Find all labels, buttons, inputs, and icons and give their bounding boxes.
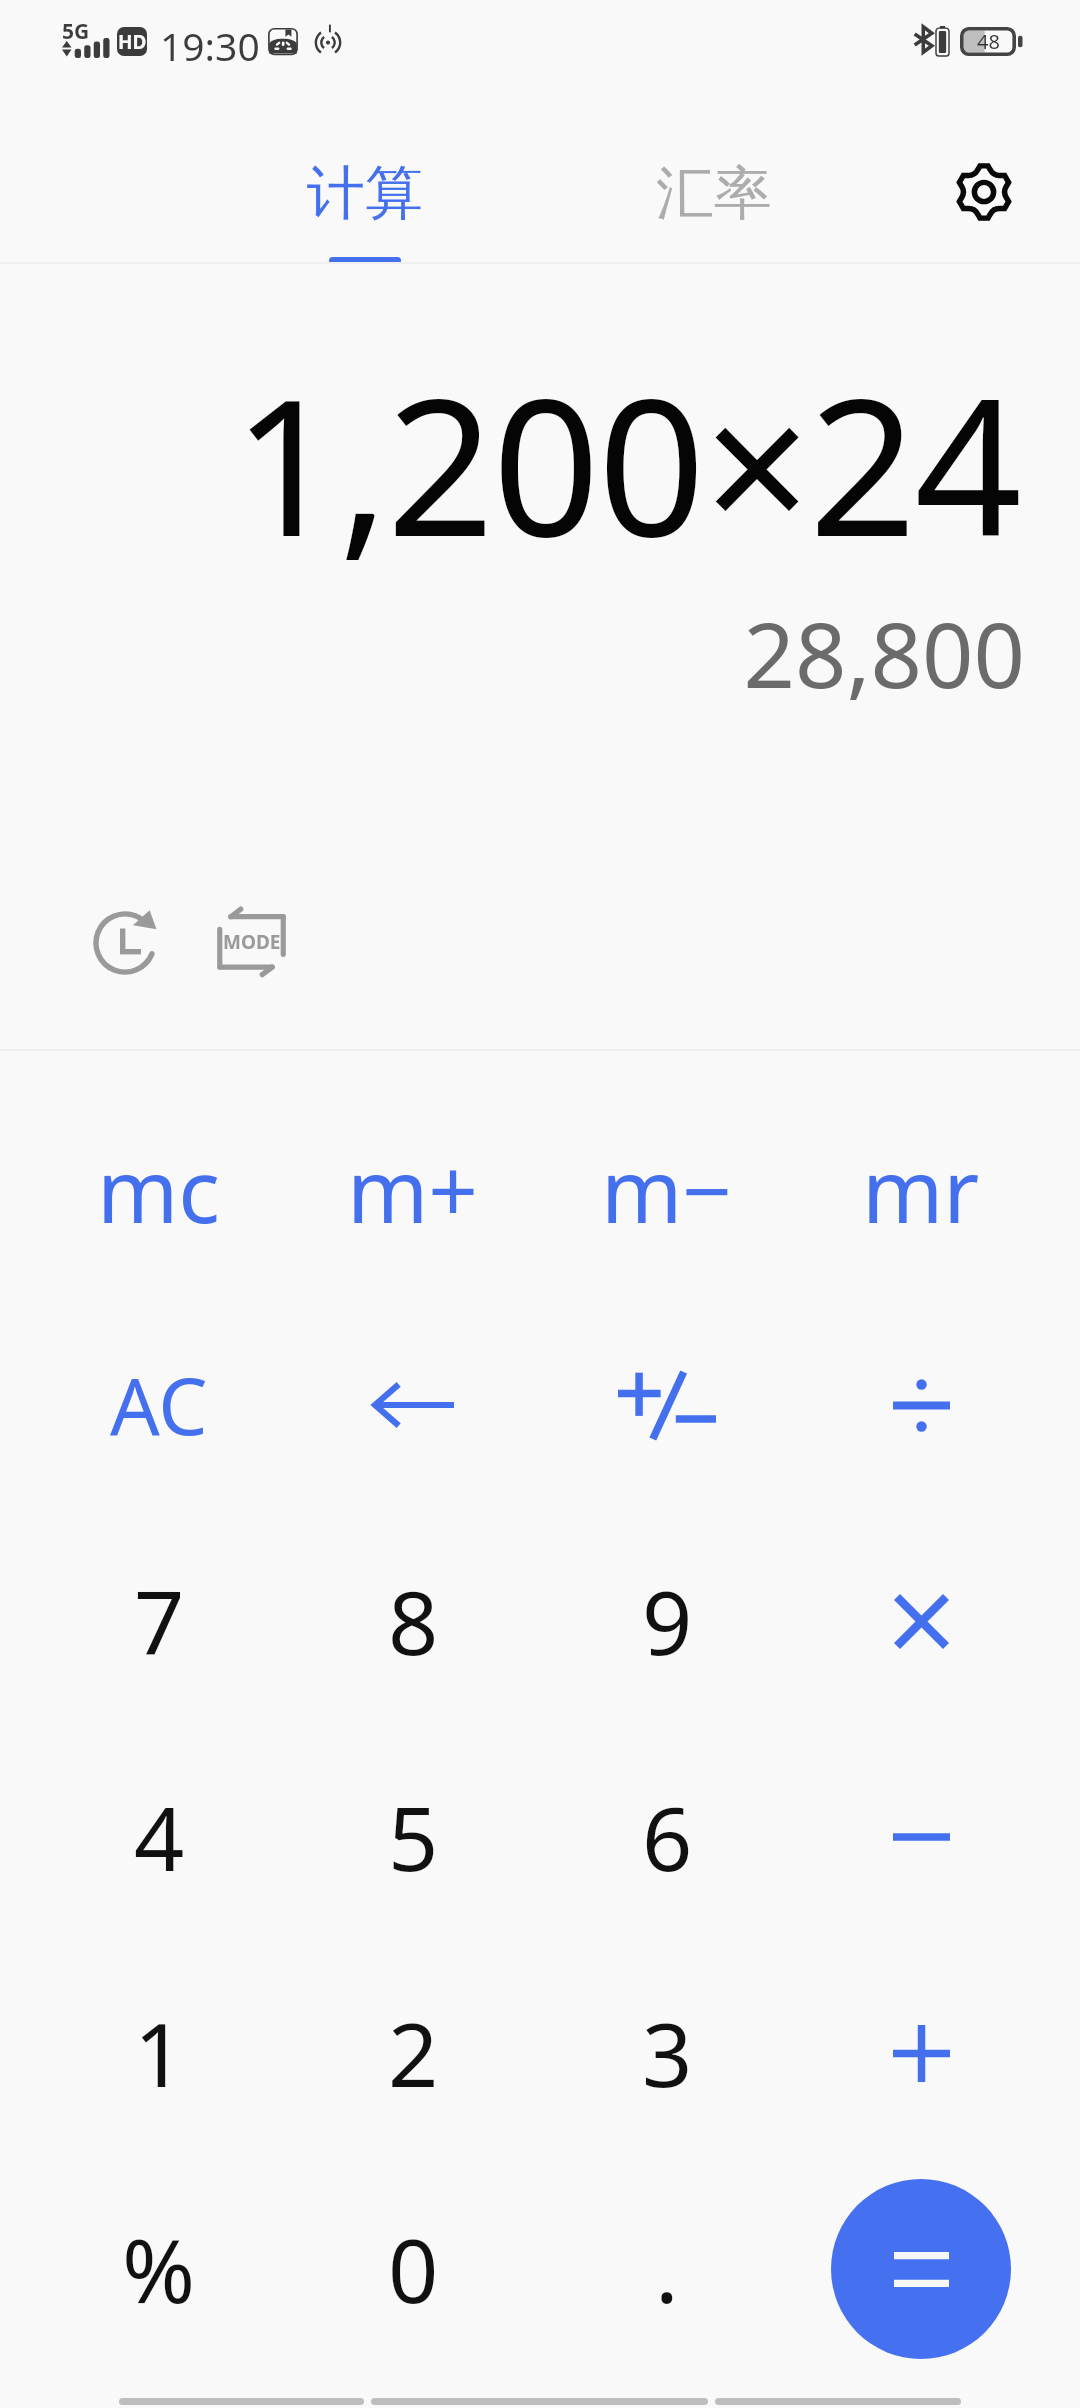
button[interactable]: 1: [32, 1945, 286, 2161]
staticText: 1: [134, 1993, 185, 2113]
button[interactable]: 8: [286, 1513, 540, 1729]
button[interactable]: mr: [794, 1081, 1048, 1297]
staticText: 19:30: [160, 19, 260, 72]
button[interactable]: 0: [286, 2161, 540, 2377]
button[interactable]: .: [540, 2161, 794, 2377]
button[interactable]: m−: [540, 1081, 794, 1297]
button[interactable]: 6: [540, 1729, 794, 1945]
button[interactable]: 5: [286, 1729, 540, 1945]
staticText: 6: [642, 1777, 693, 1897]
staticText: m−: [601, 1130, 733, 1248]
button[interactable]: AC: [32, 1297, 286, 1513]
staticText: HD: [118, 29, 147, 55]
button[interactable]: 3: [540, 1945, 794, 2161]
button[interactable]: History: [78, 896, 171, 989]
button[interactable]: Back: [119, 2398, 364, 2405]
button[interactable]: Divide: [794, 1297, 1048, 1513]
staticText: 5G: [62, 17, 90, 46]
button[interactable]: m+: [286, 1081, 540, 1297]
staticText: mr: [862, 1130, 980, 1248]
button[interactable]: Recents: [715, 2398, 961, 2405]
button[interactable]: Plus minus: [540, 1297, 794, 1513]
staticText: m+: [347, 1130, 479, 1248]
staticText: 28,800: [0, 592, 1025, 715]
staticText: mc: [97, 1130, 221, 1248]
staticText: 3: [642, 1993, 693, 2113]
button[interactable]: Equals: [831, 2179, 1011, 2359]
staticText: 9: [642, 1561, 693, 1681]
button[interactable]: 4: [32, 1729, 286, 1945]
button[interactable]: mc: [32, 1081, 286, 1297]
staticText: AC: [110, 1352, 208, 1458]
button[interactable]: 7: [32, 1513, 286, 1729]
button[interactable]: Subtract: [794, 1729, 1048, 1945]
staticText: %: [122, 2209, 196, 2329]
button[interactable]: Add: [794, 1945, 1048, 2161]
button[interactable]: Mode: [205, 894, 298, 987]
staticText: 0: [388, 2209, 439, 2329]
button[interactable]: Home: [371, 2398, 708, 2405]
button[interactable]: 汇率: [574, 90, 854, 262]
button[interactable]: %: [32, 2161, 286, 2377]
button[interactable]: Backspace: [286, 1297, 540, 1513]
staticText: 4: [134, 1777, 185, 1897]
staticText: 48: [977, 28, 1000, 55]
staticText: 计算: [307, 157, 423, 230]
staticText: .: [655, 2209, 679, 2329]
staticText: 8: [388, 1561, 439, 1681]
staticText: 2: [388, 1993, 439, 2113]
staticText: 汇率: [656, 157, 772, 230]
staticText: MODE: [223, 929, 281, 955]
staticText: 1,200×24: [0, 335, 1020, 591]
staticText: 5: [388, 1777, 439, 1897]
staticText: 7: [134, 1561, 185, 1681]
button[interactable]: 计算: [225, 90, 505, 262]
button[interactable]: Multiply: [794, 1513, 1048, 1729]
button[interactable]: 2: [286, 1945, 540, 2161]
button[interactable]: 9: [540, 1513, 794, 1729]
button[interactable]: Settings: [934, 142, 1034, 242]
